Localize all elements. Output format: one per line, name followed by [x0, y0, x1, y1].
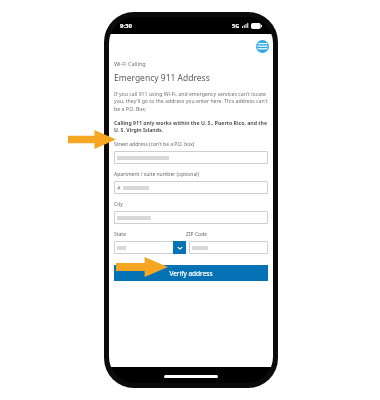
staticText: State — [114, 231, 126, 238]
staticText: If you call 911 using Wi-Fi, and emergen… — [114, 90, 268, 113]
staticText: Emergency 911 Address — [114, 72, 210, 84]
button[interactable]: # — [114, 181, 268, 194]
staticText: ZIP Code — [186, 231, 207, 238]
button[interactable] — [189, 241, 268, 254]
staticText: Verify address — [169, 269, 213, 278]
staticText: Wi-Fi Calling — [114, 60, 146, 67]
staticText: 9:30 — [120, 22, 132, 30]
button[interactable]: Carrier logo — [256, 40, 269, 53]
staticText: Street address (can't be a P.O. box) — [114, 141, 195, 148]
staticText: City — [114, 201, 123, 208]
button[interactable]: Verify address — [114, 265, 268, 281]
other: Open state list — [173, 241, 186, 254]
staticText: Calling 911 only works within the U. S.,… — [114, 119, 268, 134]
button[interactable] — [114, 211, 268, 224]
staticText: 5G — [232, 22, 240, 29]
staticText: # — [117, 184, 121, 191]
button[interactable] — [114, 151, 268, 164]
button[interactable]: Open state list — [114, 241, 186, 254]
staticText: Apartment / suite number (optional) — [114, 171, 200, 178]
